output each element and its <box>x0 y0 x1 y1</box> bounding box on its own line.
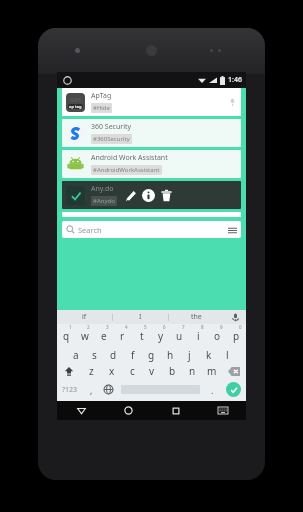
staticText: 0 <box>239 324 242 330</box>
staticText: i <box>197 329 200 343</box>
button[interactable]: Backspace <box>222 362 246 380</box>
button[interactable]: l <box>218 343 237 362</box>
button[interactable]: Search <box>62 221 241 238</box>
staticText: u <box>176 329 183 343</box>
staticText: 6 <box>163 324 166 330</box>
staticText: 2 <box>87 324 90 330</box>
button[interactable]: Info <box>139 186 157 204</box>
staticText: q <box>63 329 70 343</box>
staticText: v <box>149 364 155 378</box>
button[interactable]: the <box>169 310 224 324</box>
button[interactable]: k <box>199 343 218 362</box>
button[interactable]: Android Work Assistant <box>62 150 241 178</box>
staticText: k <box>206 348 212 362</box>
button[interactable]: 3 <box>94 324 113 343</box>
button[interactable]: Edit <box>121 186 139 204</box>
staticText: if <box>82 312 87 322</box>
button[interactable]: j <box>180 343 199 362</box>
staticText: #Anydo <box>93 197 115 205</box>
button[interactable]: Selected <box>62 181 241 209</box>
button[interactable]: if <box>57 310 112 324</box>
staticText: Search <box>78 225 102 235</box>
staticText: the <box>191 312 202 322</box>
button[interactable]: v <box>142 362 162 380</box>
button[interactable]: I <box>113 310 168 324</box>
button[interactable]: GPS <box>62 88 241 116</box>
button[interactable]: Shift <box>57 362 81 380</box>
button[interactable]: 6 <box>151 324 170 343</box>
button[interactable]: Menu <box>227 225 237 235</box>
staticText: f <box>131 348 135 362</box>
button[interactable]: x <box>102 362 122 380</box>
button[interactable]: Home <box>105 401 152 420</box>
staticText: Android Work Assistant <box>91 153 168 163</box>
staticText: #AndroidWorkAssistant <box>93 166 160 174</box>
button[interactable]: 0 <box>227 324 246 343</box>
staticText: Any.do <box>91 184 114 194</box>
button[interactable]: Switch keyboard <box>199 401 246 420</box>
other: Voice search <box>228 98 237 107</box>
staticText: 8 <box>201 324 204 330</box>
button[interactable]: Voice input <box>224 310 246 324</box>
button[interactable]: c <box>122 362 142 380</box>
button[interactable]: , <box>83 380 99 399</box>
staticText: b <box>169 364 176 378</box>
staticText: z <box>89 364 94 378</box>
staticText: e <box>101 329 107 343</box>
button[interactable]: a <box>66 343 85 362</box>
button[interactable]: f <box>123 343 142 362</box>
staticText: #360Security <box>93 135 130 143</box>
staticText: w <box>81 329 89 343</box>
staticText: x <box>109 364 115 378</box>
button[interactable]: m <box>202 362 222 380</box>
staticText: t <box>140 329 144 343</box>
button[interactable]: ?123 <box>57 380 83 399</box>
button[interactable]: b <box>162 362 182 380</box>
staticText: 4 <box>125 324 128 330</box>
button[interactable]: 360 Security <box>62 119 241 147</box>
staticText: #Hide <box>93 104 110 112</box>
staticText: 3 <box>106 324 109 330</box>
staticText: ApTag <box>91 91 112 101</box>
button[interactable]: 8 <box>189 324 208 343</box>
staticText: l <box>226 348 229 362</box>
button[interactable]: d <box>104 343 123 362</box>
staticText: ?123 <box>62 385 78 395</box>
staticText: , <box>90 384 93 396</box>
staticText: GPS <box>70 96 82 104</box>
staticText: d <box>110 348 117 362</box>
staticText: g <box>148 348 155 362</box>
button[interactable]: Recent apps <box>152 401 199 420</box>
button[interactable]: Change language <box>99 380 117 399</box>
button[interactable]: Back <box>57 401 105 420</box>
button[interactable]: Delete <box>157 186 175 204</box>
staticText: p <box>233 329 240 343</box>
staticText: c <box>130 364 135 378</box>
button[interactable]: g <box>142 343 161 362</box>
button[interactable]: s <box>85 343 104 362</box>
button[interactable]: h <box>161 343 180 362</box>
staticText: 1:46 <box>228 75 242 85</box>
button[interactable]: . <box>204 380 220 399</box>
button[interactable]: 1 <box>57 324 75 343</box>
button[interactable]: 5 <box>132 324 151 343</box>
button[interactable]: 2 <box>75 324 94 343</box>
staticText: 1 <box>69 324 72 330</box>
staticText: y <box>158 329 164 343</box>
staticText: ap tag <box>69 104 82 109</box>
staticText: 5 <box>144 324 147 330</box>
staticText: a <box>73 348 79 362</box>
staticText: m <box>207 364 217 378</box>
button[interactable]: n <box>182 362 202 380</box>
staticText: 9 <box>220 324 223 330</box>
staticText: r <box>120 329 125 343</box>
button[interactable]: 9 <box>208 324 227 343</box>
staticText: j <box>188 348 191 362</box>
button[interactable]: 4 <box>113 324 132 343</box>
staticText: n <box>189 364 196 378</box>
staticText: . <box>211 384 214 396</box>
button[interactable]: z <box>81 362 102 380</box>
button[interactable]: 7 <box>170 324 189 343</box>
button[interactable]: Done <box>226 382 241 397</box>
